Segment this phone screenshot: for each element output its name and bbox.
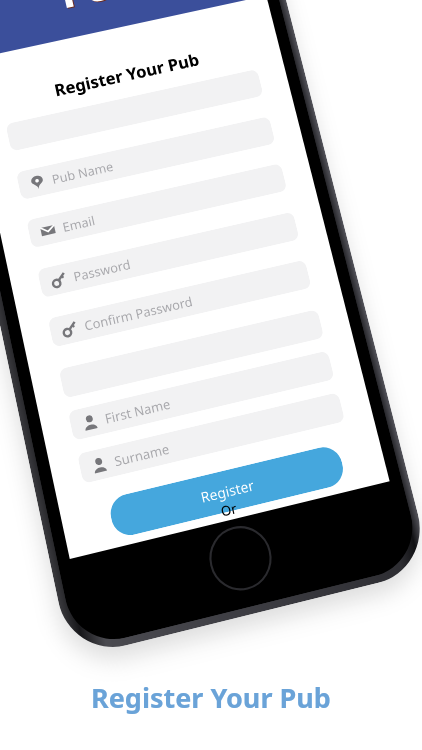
staticText: Confirm Password [82,292,194,334]
staticText: PUB [56,0,142,19]
button[interactable]: Pub Name [16,116,276,200]
button[interactable]: First Name [68,350,335,441]
button[interactable]: Home [202,518,279,598]
staticText: Register Your Pub [0,31,281,119]
button[interactable] [59,309,324,398]
staticText: Register [199,475,256,507]
staticText: Or [65,462,389,557]
staticText: First Name [103,394,173,427]
button[interactable] [5,69,264,152]
staticText: Surname [112,439,171,469]
staticText: Pub Name [50,157,115,187]
staticText: Register Your Pub [91,679,331,716]
button[interactable]: Email [26,163,287,248]
button[interactable]: Surname [77,392,345,484]
staticText: Email [61,211,97,235]
button[interactable]: Register [107,443,347,539]
staticText: PUB [57,0,143,19]
staticText: Password [72,255,132,284]
button[interactable]: Confirm Password [48,259,312,347]
button[interactable]: Password [37,211,300,298]
